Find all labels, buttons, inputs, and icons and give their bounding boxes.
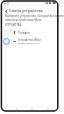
staticText: Выберите устройство, которое вы хотите з… xyxy=(5,14,64,22)
staticText: Устройство Wear xyxy=(18,38,41,42)
staticText: УСТРОЙСТВА xyxy=(5,23,22,26)
button[interactable]: Recents xyxy=(44,106,52,112)
staticText: Galaxy Watch4 (LTE) xyxy=(18,42,40,45)
staticText: 9:41 xyxy=(4,2,10,6)
button[interactable]: Устройство Wear xyxy=(3,37,53,46)
button[interactable]: Телефон xyxy=(3,28,53,37)
button[interactable]: Back xyxy=(13,106,21,112)
staticText: Телефон xyxy=(18,31,30,35)
staticText: Смена устройства xyxy=(9,8,43,13)
button[interactable]: Back xyxy=(2,7,10,15)
button[interactable]: Home xyxy=(28,106,36,112)
